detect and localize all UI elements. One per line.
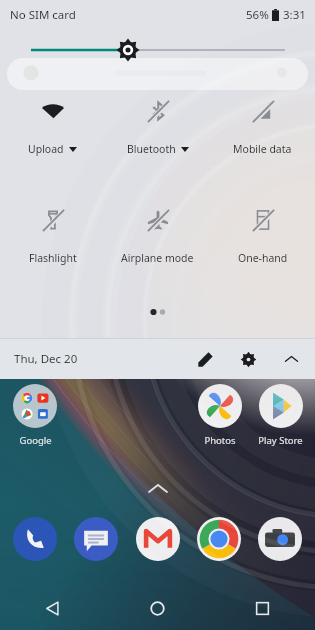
button[interactable]: Photos [189, 384, 250, 447]
button[interactable]: Camera [258, 517, 302, 561]
staticText: 56% [246, 7, 269, 23]
button[interactable]: Play Store [250, 384, 311, 447]
staticText: No SIM card [10, 7, 76, 23]
staticText: 3:31 [283, 7, 306, 23]
button[interactable]: Settings [233, 344, 263, 374]
button[interactable]: Recents [210, 586, 315, 630]
button[interactable]: Messages [74, 517, 118, 561]
staticText: One-hand [238, 251, 288, 265]
staticText: Photos [204, 434, 236, 447]
staticText: Google [19, 434, 52, 447]
button[interactable]: Home [105, 586, 210, 630]
button[interactable]: Google [4, 384, 66, 447]
button[interactable]: Upload [0, 96, 105, 176]
button[interactable]: Flashlight [0, 205, 105, 285]
button[interactable]: Collapse [276, 344, 306, 374]
button[interactable]: One-hand [210, 205, 315, 285]
button[interactable]: Bluetooth [105, 96, 210, 176]
staticText: Play Store [258, 434, 303, 447]
button[interactable]: Edit [190, 344, 220, 374]
button[interactable]: Chrome [197, 517, 241, 561]
button[interactable]: Airplane mode [105, 205, 210, 285]
staticText: Airplane mode [121, 251, 194, 265]
staticText: Bluetooth [127, 142, 176, 156]
button[interactable]: Back [0, 586, 105, 630]
staticText: Mobile data [233, 142, 292, 156]
staticText: Upload [28, 142, 64, 156]
button[interactable]: Gmail [136, 517, 180, 561]
staticText: Flashlight [29, 251, 77, 265]
staticText: Thu, Dec 20 [14, 351, 78, 367]
button[interactable]: Phone [13, 517, 57, 561]
button[interactable]: Mobile data [210, 96, 315, 176]
